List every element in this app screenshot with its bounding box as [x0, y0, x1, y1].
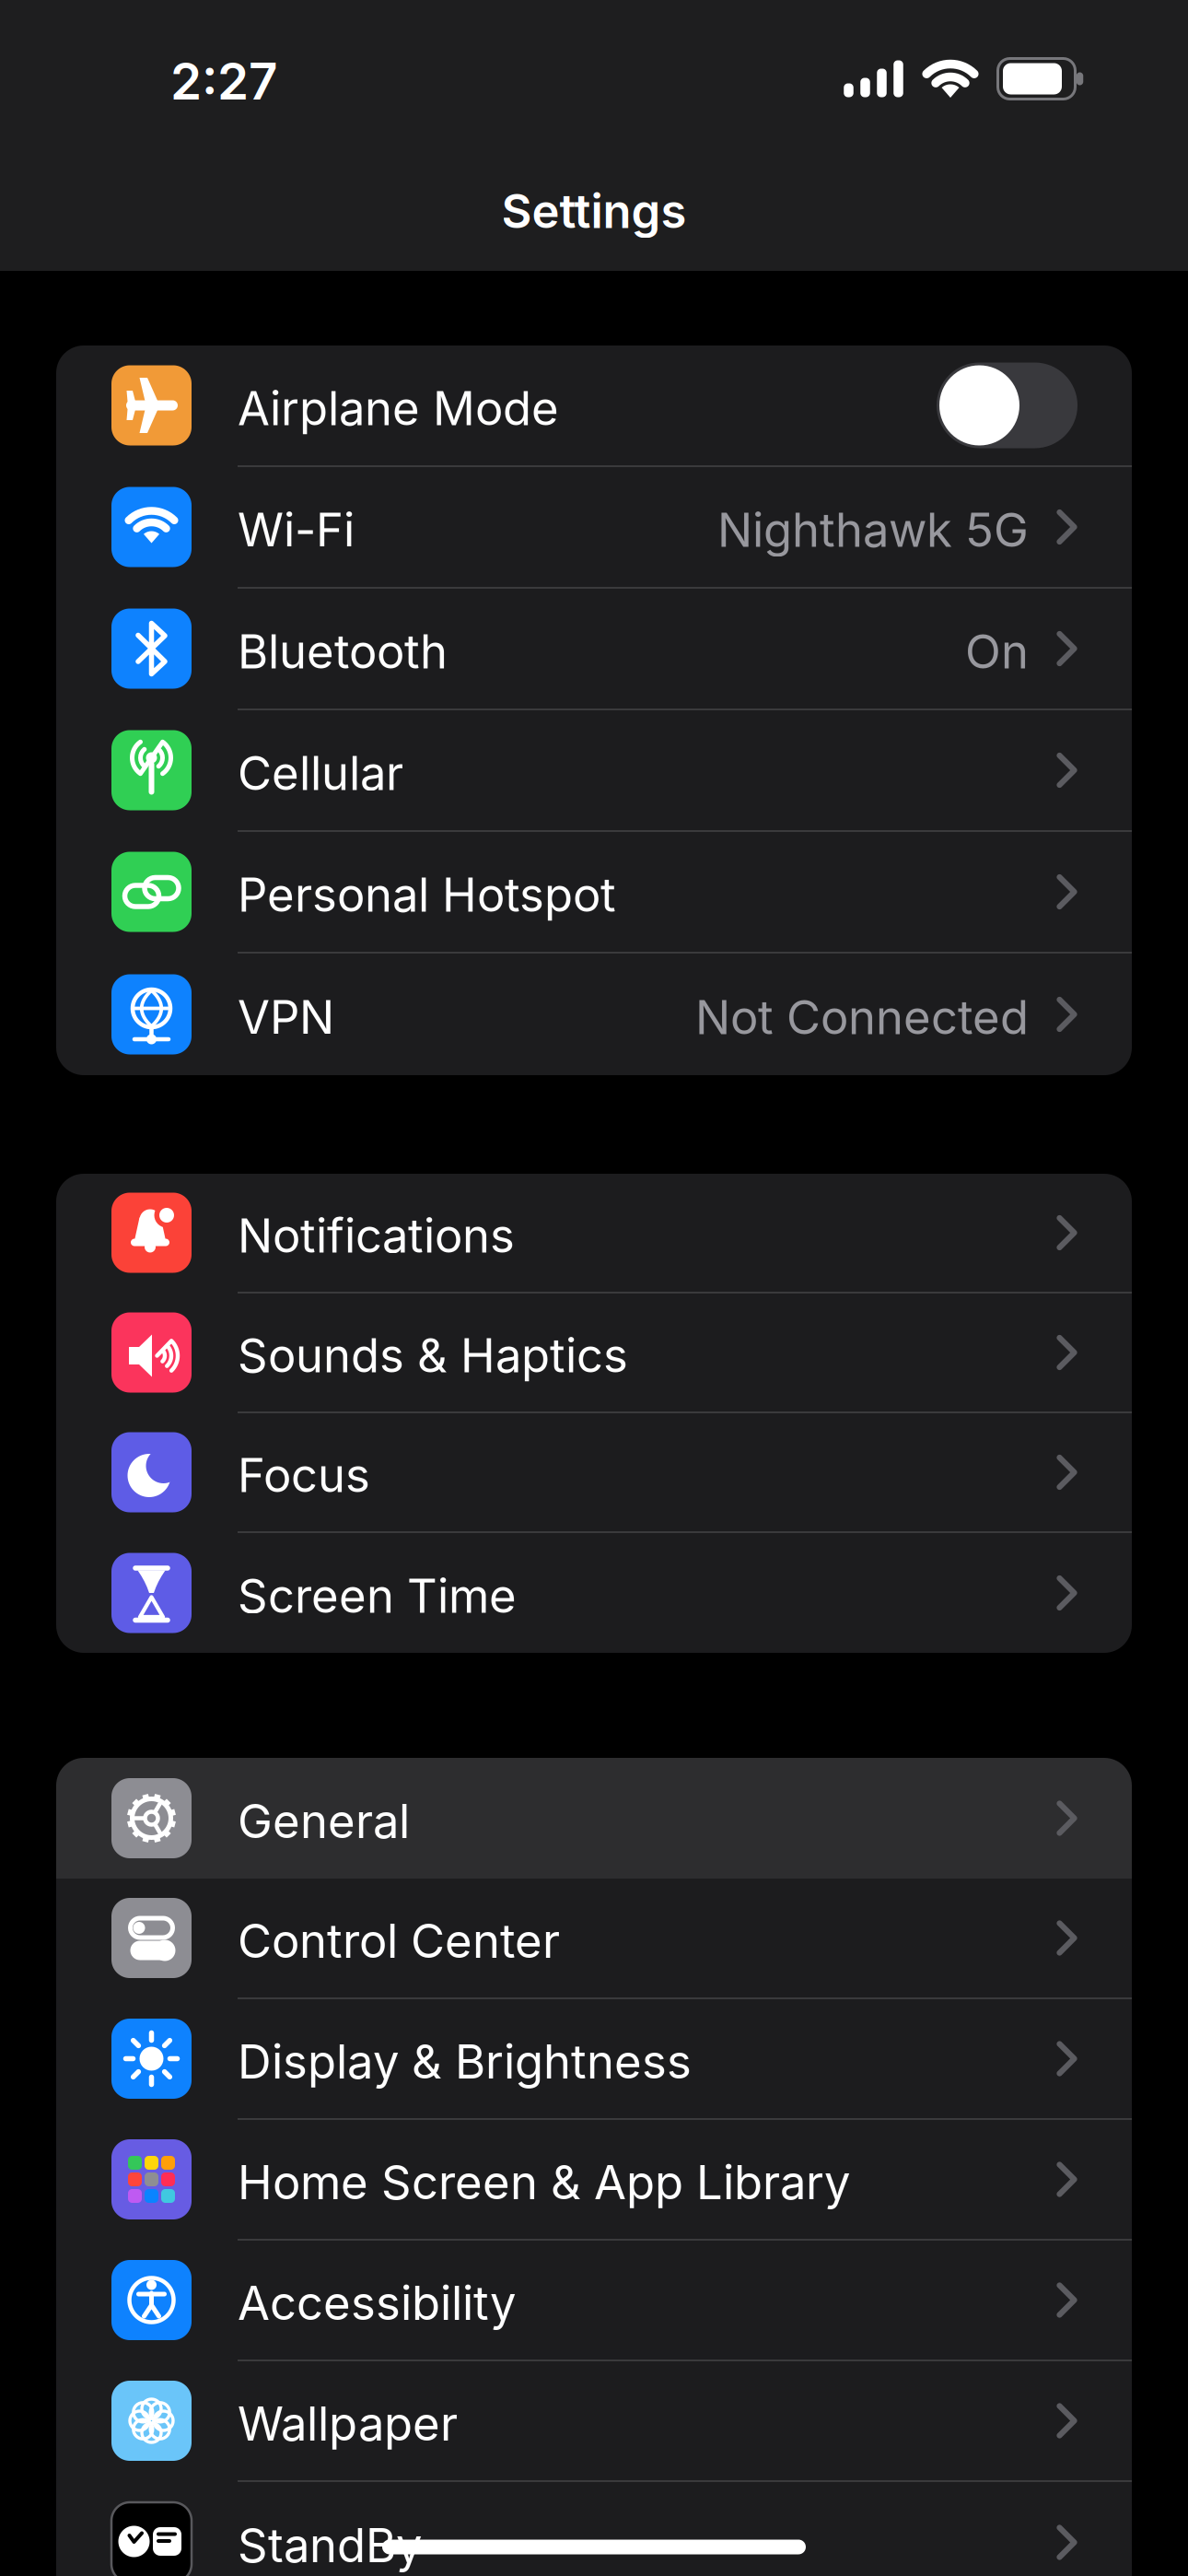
button[interactable]: Airplane Mode — [56, 345, 1132, 465]
staticText: General — [238, 1793, 410, 1849]
button[interactable]: Accessibility — [56, 2241, 1132, 2359]
button[interactable]: Screen Time — [56, 1533, 1132, 1653]
button[interactable]: Home Screen & App Library — [56, 2120, 1132, 2239]
button[interactable]: VPN — [56, 954, 1132, 1075]
button[interactable]: StandBy — [56, 2482, 1132, 2576]
button[interactable]: Control Center — [56, 1879, 1132, 1997]
button[interactable]: Wi-Fi — [56, 467, 1132, 587]
staticText: Personal Hotspot — [238, 867, 616, 922]
button[interactable]: Bluetooth — [56, 589, 1132, 708]
staticText: Bluetooth — [238, 624, 448, 679]
staticText: Wallpaper — [238, 2396, 458, 2451]
staticText: Control Center — [238, 1913, 560, 1968]
staticText: Screen Time — [238, 1568, 517, 1623]
staticText: Notifications — [238, 1208, 515, 1263]
staticText: Display & Brightness — [238, 2034, 692, 2089]
staticText: Focus — [238, 1447, 370, 1503]
button[interactable]: Sounds & Haptics — [56, 1294, 1132, 1411]
button[interactable]: Cellular — [56, 710, 1132, 830]
staticText: Home Screen & App Library — [238, 2155, 850, 2210]
button[interactable]: Wallpaper — [56, 2361, 1132, 2480]
button[interactable]: Notifications — [56, 1174, 1132, 1292]
staticText: 2:27 — [170, 51, 277, 111]
staticText: Not Connected — [695, 990, 1029, 1045]
button[interactable]: Display & Brightness — [56, 1999, 1132, 2118]
button[interactable]: Personal Hotspot — [56, 832, 1132, 952]
staticText: Cellular — [238, 745, 403, 801]
button[interactable]: General — [56, 1758, 1132, 1879]
staticText: StandBy — [238, 2518, 422, 2573]
button[interactable]: Focus — [56, 1413, 1132, 1531]
staticText: Wi-Fi — [238, 502, 355, 557]
staticText: On — [965, 624, 1029, 679]
staticText: Settings — [501, 183, 687, 239]
staticText: Nighthawk 5G — [717, 502, 1029, 557]
staticText: Accessibility — [238, 2275, 516, 2330]
staticText: Airplane Mode — [238, 381, 559, 436]
button[interactable]: Airplane Mode — [937, 363, 1077, 448]
staticText: VPN — [238, 990, 334, 1045]
staticText: Sounds & Haptics — [238, 1328, 628, 1383]
